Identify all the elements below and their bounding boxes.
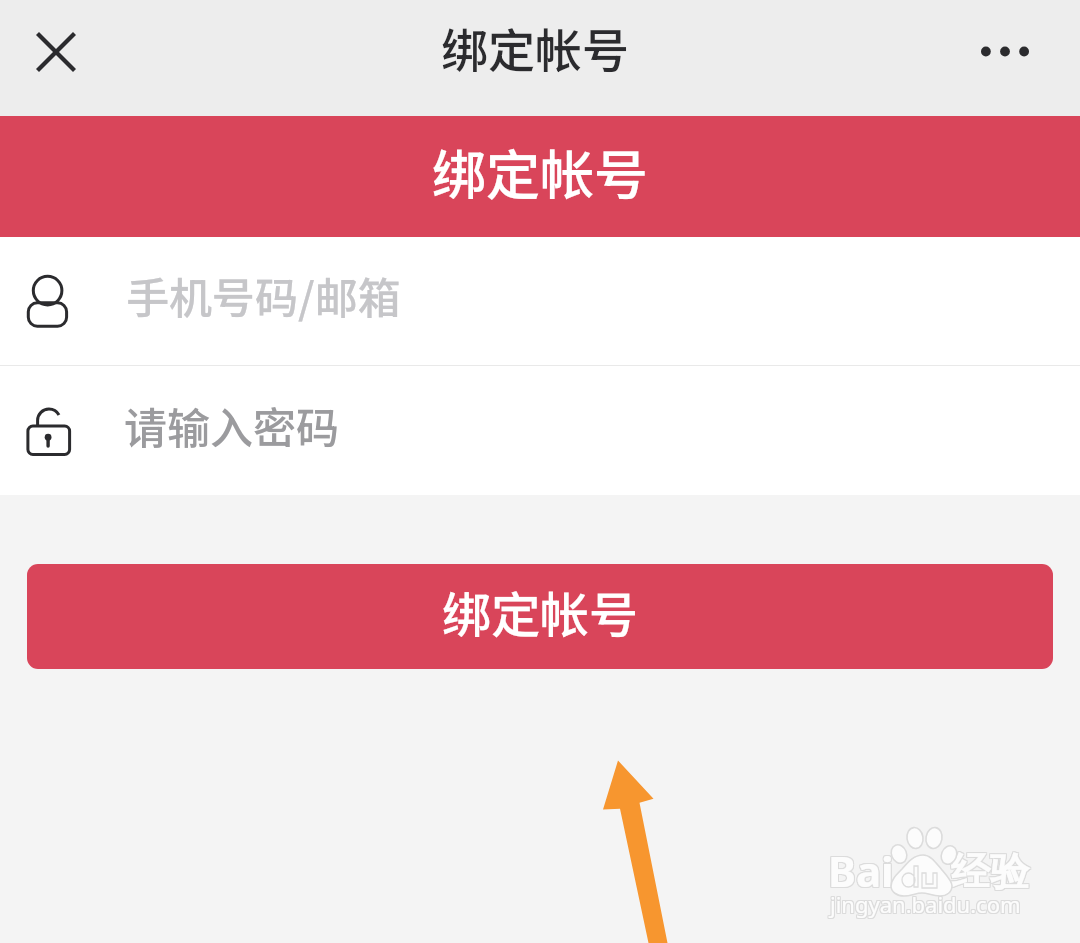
button[interactable]: More options (961, 7, 1049, 95)
staticText: 经验 (951, 846, 1029, 895)
staticText: 经验 (950, 848, 1028, 897)
staticText: 经验 (952, 846, 1030, 895)
staticText: 经验 (950, 847, 1028, 896)
staticText: jingyan.baidu.com (829, 890, 1020, 920)
staticText: jingyan.baidu.com (830, 889, 1021, 919)
staticText: 经验 (952, 847, 1030, 896)
staticText: 经验 (951, 847, 1029, 896)
staticText: 手机号码/邮箱 (126, 264, 401, 326)
staticText: Bai (828, 842, 894, 899)
other: Account (27, 273, 68, 329)
other: Password (27, 403, 70, 459)
staticText: jingyan.baidu.com (829, 888, 1020, 918)
staticText: 请输入密码 (124, 394, 339, 456)
button[interactable]: Account (0, 237, 1080, 365)
staticText: 绑定帐号 (441, 13, 629, 81)
staticText: jingyan.baidu.com (830, 890, 1021, 920)
staticText: Bai (827, 842, 893, 899)
staticText: Bai (829, 841, 895, 898)
staticText: jingyan.baidu.com (831, 889, 1022, 919)
staticText: Bai (827, 843, 893, 900)
staticText: jingyan.baidu.com (831, 890, 1022, 920)
staticText: Bai (828, 841, 894, 898)
staticText: 经验 (950, 846, 1028, 895)
staticText: Bai (829, 843, 895, 900)
staticText: 绑定帐号 (432, 132, 648, 210)
staticText: Bai (828, 843, 894, 900)
button[interactable]: 绑定帐号 (27, 564, 1053, 669)
staticText: Bai (829, 842, 895, 899)
staticText: Bai (827, 841, 893, 898)
staticText: 绑定帐号 (442, 576, 639, 647)
staticText: jingyan.baidu.com (829, 889, 1020, 919)
staticText: jingyan.baidu.com (831, 888, 1022, 918)
staticText: 经验 (952, 848, 1030, 897)
button[interactable]: Close (12, 8, 100, 96)
staticText: 经验 (951, 848, 1029, 897)
button[interactable]: Password (0, 366, 1080, 495)
staticText: jingyan.baidu.com (830, 888, 1021, 918)
